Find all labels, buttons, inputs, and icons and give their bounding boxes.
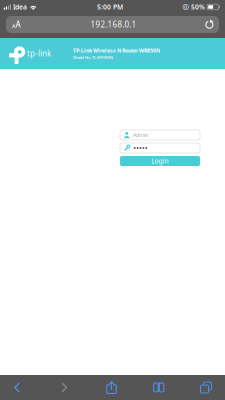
button[interactable]: Share xyxy=(94,375,128,400)
button[interactable]: Tabs xyxy=(189,375,223,400)
staticText: TP-Link Wireless N Router WR850N xyxy=(73,47,160,54)
staticText: A xyxy=(16,19,21,30)
button[interactable]: Bookmarks xyxy=(142,375,176,400)
button[interactable]: Login xyxy=(120,156,200,166)
staticText: tp-link xyxy=(27,48,51,59)
staticText: Login xyxy=(151,157,168,165)
staticText: 50% xyxy=(191,3,205,11)
staticText: Idea xyxy=(13,3,27,11)
staticText: 5:00 PM xyxy=(97,3,123,11)
staticText: 192.168.0.1 xyxy=(90,19,136,30)
button[interactable]: Back xyxy=(0,375,34,400)
staticText: A xyxy=(12,23,15,30)
staticText: Admin xyxy=(133,131,148,139)
button[interactable]: Forward xyxy=(47,375,81,400)
staticText: Model No. TL-WR850N xyxy=(73,55,113,60)
button[interactable]: Reload xyxy=(187,16,219,33)
button[interactable]: Page settings xyxy=(6,16,40,33)
